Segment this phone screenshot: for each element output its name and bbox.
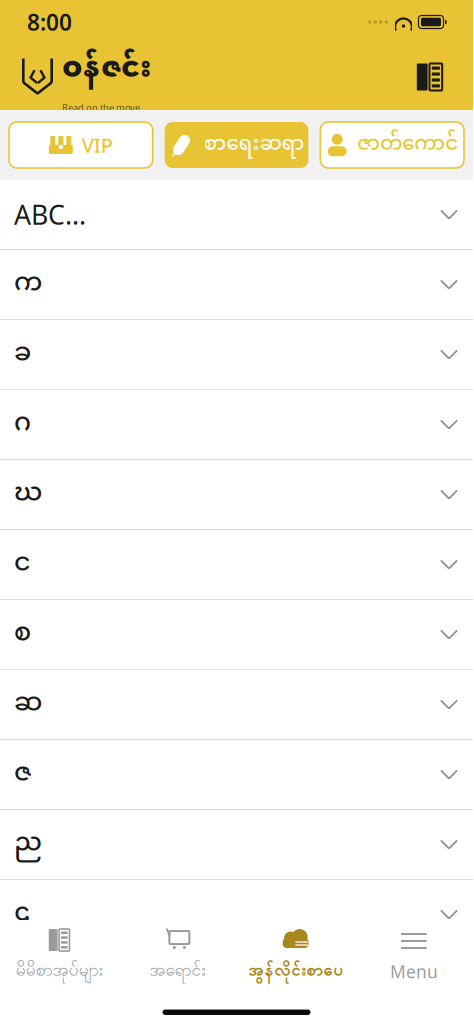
staticText: မိမိစာအုပ်များ: [16, 959, 103, 984]
button[interactable]: က: [0, 250, 473, 320]
button[interactable]: င: [0, 530, 473, 600]
staticText: ဂ: [14, 397, 31, 451]
button[interactable]: အွန်လိုင်းစာပေ: [236, 922, 355, 990]
button[interactable]: ဇ: [0, 740, 473, 810]
button[interactable]: ဃ: [0, 460, 473, 530]
staticText: ဃ: [14, 467, 42, 521]
staticText: ABC...: [14, 197, 86, 232]
button[interactable]: ဆ: [0, 670, 473, 740]
button[interactable]: ဂ: [0, 390, 473, 460]
staticText: Read on the move: [62, 101, 140, 113]
button[interactable]: ဇာတ်ကောင်: [320, 122, 464, 168]
staticText: ဇာတ်ကောင်: [357, 124, 458, 166]
staticText: င: [14, 537, 31, 591]
staticText: က: [14, 257, 42, 311]
button[interactable]: Library: [408, 55, 451, 98]
button[interactable]: ဋ: [0, 880, 473, 950]
button[interactable]: မိမိစာအုပ်များ: [0, 922, 118, 990]
staticText: အရောင်း: [149, 959, 205, 984]
button[interactable]: အရောင်း: [118, 922, 236, 990]
staticText: စ: [14, 607, 31, 661]
button[interactable]: ခ: [0, 320, 473, 390]
button[interactable]: စ: [0, 600, 473, 670]
staticText: အွန်လိုင်းစာပေ: [248, 959, 343, 984]
staticText: ဋ: [14, 887, 31, 941]
button[interactable]: ည: [0, 810, 473, 880]
staticText: စာရေးဆရာ: [203, 124, 304, 166]
staticText: ဇ: [14, 747, 31, 801]
button[interactable]: VIP: [9, 122, 153, 168]
staticText: VIP: [82, 132, 113, 158]
button[interactable]: Menu: [355, 923, 473, 989]
staticText: ဝန်ဇင်း: [62, 40, 151, 100]
button[interactable]: ABC...: [0, 180, 473, 250]
staticText: ည: [14, 817, 42, 871]
staticText: ခ: [14, 327, 31, 381]
staticText: 8:00: [27, 7, 72, 37]
staticText: Menu: [390, 960, 438, 983]
button[interactable]: စာရေးဆရာ: [165, 122, 308, 168]
staticText: ဆ: [14, 677, 42, 731]
